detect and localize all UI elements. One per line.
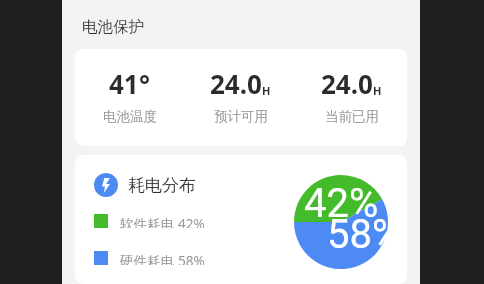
staticText: 24.0 [321, 66, 373, 101]
staticText: 电池保护 [82, 17, 144, 37]
staticText: 58% [327, 211, 402, 258]
staticText: 耗电分布 [128, 175, 196, 196]
staticText: 当前已用 [325, 108, 379, 125]
button[interactable]: 41 [75, 49, 407, 146]
staticText: 预计可用 [214, 108, 268, 125]
button[interactable]: 耗电分布 [75, 155, 407, 284]
staticText: 硬件耗电 58% [120, 251, 205, 265]
staticText: H [373, 83, 382, 98]
staticText: 24.0 [210, 66, 262, 101]
staticText: H [262, 83, 271, 98]
staticText: 软件耗电 42% [120, 214, 205, 228]
staticText: ° [139, 66, 151, 101]
staticText: 42% [304, 180, 379, 227]
staticText: 41 [109, 66, 139, 101]
staticText: 电池温度 [103, 108, 157, 125]
